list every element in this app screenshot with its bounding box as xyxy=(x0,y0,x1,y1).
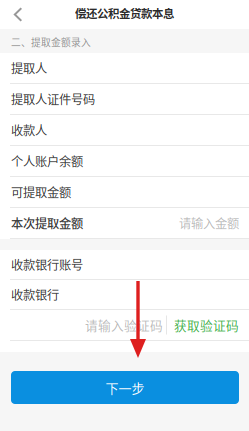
staticText: 二、提取金额录入 xyxy=(11,35,91,49)
staticText: 下一步 xyxy=(105,378,144,397)
button[interactable]: 可提取金额 xyxy=(0,177,249,208)
staticText: 可提取金额 xyxy=(11,183,71,201)
button[interactable]: 请输入验证码 xyxy=(0,310,249,341)
button[interactable]: 提取人 xyxy=(0,53,249,84)
button[interactable]: 下一步 xyxy=(11,371,239,404)
staticText: 收款人 xyxy=(11,121,47,139)
staticText: 获取验证码 xyxy=(174,316,239,334)
staticText: 个人账户余额 xyxy=(11,152,83,170)
staticText: 请输入验证码 xyxy=(85,316,163,334)
staticText: 请输入金额 xyxy=(179,214,239,232)
staticText: 提取人 xyxy=(11,59,47,77)
staticText: 收款银行 xyxy=(11,286,59,303)
staticText: 本次提取金额 xyxy=(11,214,83,232)
button[interactable]: 返回 xyxy=(0,0,35,29)
button[interactable]: 收款银行账号 xyxy=(0,250,249,280)
button[interactable]: 提取人证件号码 xyxy=(0,84,249,115)
button[interactable]: 收款银行 xyxy=(0,280,249,310)
button[interactable]: 个人账户余额 xyxy=(0,146,249,177)
button[interactable]: 本次提取金额 xyxy=(0,208,249,239)
button[interactable]: 收款人 xyxy=(0,115,249,146)
staticText: 偿还公积金贷款本息 xyxy=(75,5,174,21)
staticText: 提取人证件号码 xyxy=(11,90,95,108)
staticText: 收款银行账号 xyxy=(11,256,83,273)
